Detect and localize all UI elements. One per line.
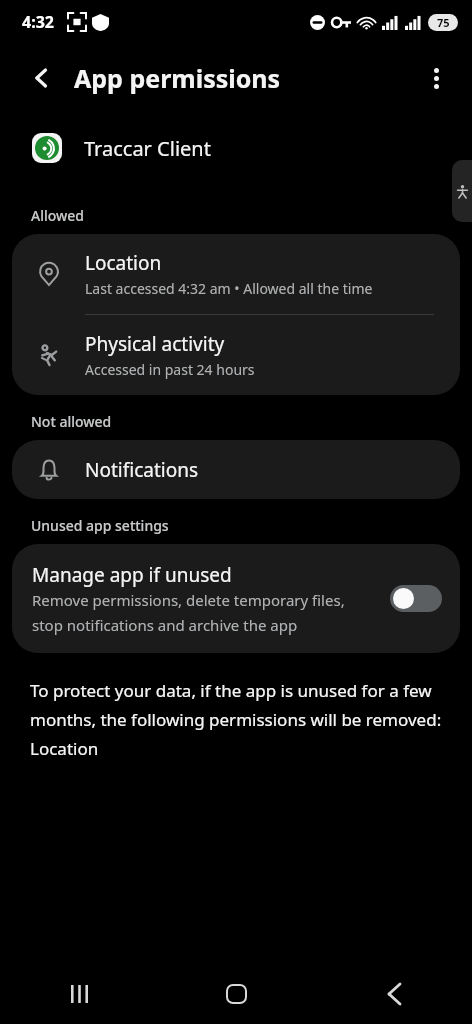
staticText: Manage app if unused <box>32 562 232 588</box>
button[interactable]: More options <box>416 58 456 98</box>
staticText: Physical activity <box>85 331 225 357</box>
staticText: Not allowed <box>31 412 112 431</box>
button[interactable]: Traccar Client <box>0 112 472 184</box>
staticText: 4:32 <box>22 11 54 33</box>
staticText: App permissions <box>74 61 281 95</box>
staticText: Notifications <box>85 457 199 483</box>
staticText: Location <box>85 250 162 276</box>
button[interactable]: Accessibility shortcut <box>452 160 472 222</box>
button[interactable]: Location <box>12 234 460 314</box>
button[interactable]: Manage app if unused <box>12 544 460 653</box>
button[interactable]: Physical activity <box>12 315 460 395</box>
staticText: Traccar Client <box>84 135 211 162</box>
button[interactable]: Recent apps <box>0 964 158 1024</box>
staticText: Unused app settings <box>31 516 169 535</box>
staticText: To protect your data, if the app is unus… <box>30 679 442 760</box>
button[interactable]: Home <box>158 964 315 1024</box>
staticText: 75 <box>437 15 450 30</box>
staticText: Allowed <box>31 206 85 225</box>
staticText: Last accessed 4:32 am • Allowed all the … <box>85 279 373 298</box>
staticText: Remove permissions, delete temporary fil… <box>32 590 378 635</box>
button[interactable]: Back <box>315 964 472 1024</box>
button[interactable]: Notifications <box>12 440 460 499</box>
button[interactable]: Back <box>22 58 62 98</box>
button[interactable]: Manage app if unused toggle <box>390 585 442 612</box>
staticText: Accessed in past 24 hours <box>85 360 255 379</box>
